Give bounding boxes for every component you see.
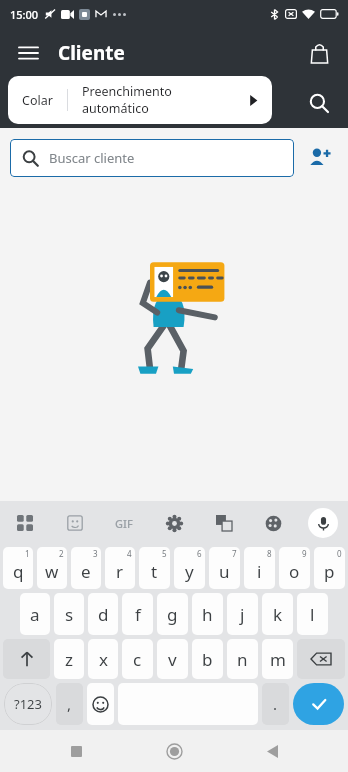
staticText: 9 xyxy=(302,548,307,559)
staticText: d xyxy=(98,603,109,626)
staticText: 15:00 xyxy=(10,7,39,22)
button[interactable]: Stickers xyxy=(60,508,90,538)
button[interactable]: o xyxy=(279,547,310,589)
button[interactable]: l xyxy=(297,593,328,635)
staticText: u xyxy=(219,560,230,583)
button[interactable]: Preenchimento automático xyxy=(68,76,234,124)
button[interactable]: More xyxy=(234,76,272,124)
button[interactable]: Colar xyxy=(8,76,67,124)
staticText: y xyxy=(185,560,194,583)
button[interactable]: Menu xyxy=(8,33,48,73)
button[interactable]: k xyxy=(262,593,293,635)
button[interactable]: u xyxy=(209,547,240,589)
button[interactable]: i xyxy=(244,547,275,589)
button[interactable]: f xyxy=(122,593,153,635)
button[interactable]: Voice input xyxy=(308,508,338,538)
staticText: b xyxy=(202,648,213,671)
staticText: z xyxy=(65,648,73,671)
button[interactable]: p xyxy=(314,547,345,589)
button[interactable]: r xyxy=(105,547,135,589)
staticText: Buscar cliente xyxy=(49,149,135,167)
button[interactable]: Cart xyxy=(298,32,340,74)
staticText: 2 xyxy=(59,548,64,559)
button[interactable]: q xyxy=(3,547,33,589)
staticText: q xyxy=(13,560,24,583)
button[interactable]: . xyxy=(262,683,289,725)
staticText: . xyxy=(273,694,278,714)
button[interactable]: m xyxy=(262,639,293,679)
button[interactable]: Backspace xyxy=(297,639,345,679)
staticText: m xyxy=(270,648,286,671)
staticText: t xyxy=(151,560,158,583)
button[interactable]: v xyxy=(157,639,188,679)
staticText: p xyxy=(324,560,335,583)
button[interactable]: t xyxy=(139,547,170,589)
staticText: Preenchimento automático xyxy=(82,83,234,117)
button[interactable]: h xyxy=(192,593,223,635)
staticText: 8 xyxy=(267,548,272,559)
button[interactable]: x xyxy=(88,639,118,679)
staticText: r xyxy=(116,560,124,583)
button[interactable]: Apps xyxy=(10,508,40,538)
staticText: o xyxy=(289,560,300,583)
staticText: w xyxy=(45,560,59,583)
staticText: k xyxy=(273,603,283,626)
staticText: s xyxy=(65,603,74,626)
staticText: l xyxy=(310,603,315,626)
staticText: i xyxy=(257,560,262,583)
button[interactable]: Translate xyxy=(209,508,239,538)
staticText: n xyxy=(237,648,248,671)
button[interactable]: Emoji xyxy=(87,683,114,725)
button[interactable]: Theme xyxy=(258,508,288,538)
button[interactable]: g xyxy=(157,593,188,635)
button[interactable]: Done xyxy=(293,683,344,725)
button[interactable]: d xyxy=(88,593,118,635)
staticText: 3 xyxy=(93,548,98,559)
button[interactable]: Back xyxy=(250,730,294,772)
button[interactable]: Recents xyxy=(54,730,98,772)
staticText: v xyxy=(168,648,177,671)
button[interactable]: e xyxy=(71,547,101,589)
staticText: 0 xyxy=(337,548,342,559)
staticText: ?123 xyxy=(14,695,42,713)
staticText: x xyxy=(99,648,108,671)
staticText: 1 xyxy=(25,548,30,559)
button[interactable]: , xyxy=(56,683,83,725)
button[interactable]: s xyxy=(54,593,84,635)
button[interactable]: Settings xyxy=(159,508,189,538)
button[interactable]: c xyxy=(122,639,153,679)
staticText: j xyxy=(240,603,245,626)
button[interactable]: w xyxy=(37,547,67,589)
staticText: a xyxy=(30,603,40,626)
staticText: f xyxy=(135,603,141,626)
staticText: , xyxy=(67,694,72,714)
staticText: 6 xyxy=(197,548,202,559)
staticText: h xyxy=(202,603,213,626)
button[interactable]: Add client xyxy=(300,138,340,178)
staticText: Cliente xyxy=(58,40,125,66)
button[interactable]: Search xyxy=(298,82,340,124)
staticText: 5 xyxy=(162,548,167,559)
button[interactable]: b xyxy=(192,639,223,679)
staticText: GIF xyxy=(115,516,133,531)
button[interactable]: z xyxy=(54,639,84,679)
button[interactable]: Shift xyxy=(3,639,50,679)
staticText: 7 xyxy=(232,548,237,559)
staticText: e xyxy=(81,560,91,583)
staticText: Colar xyxy=(22,92,53,109)
button[interactable]: a xyxy=(20,593,50,635)
button[interactable]: Home xyxy=(152,730,196,772)
button[interactable]: ?123 xyxy=(4,683,52,725)
staticText: c xyxy=(133,648,142,671)
staticText: g xyxy=(167,603,178,626)
button[interactable]: Buscar cliente xyxy=(10,139,294,177)
button[interactable]: j xyxy=(227,593,258,635)
staticText: 4 xyxy=(127,548,132,559)
button[interactable]: y xyxy=(174,547,205,589)
button[interactable]: GIF xyxy=(109,508,139,538)
button[interactable]: n xyxy=(227,639,258,679)
